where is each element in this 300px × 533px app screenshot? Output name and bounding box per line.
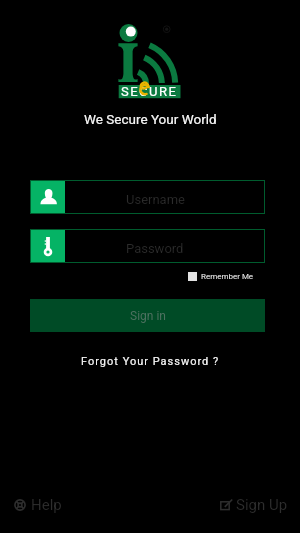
other: User (30, 180, 65, 214)
staticText: Username (126, 192, 185, 207)
staticText: SECURE (121, 84, 178, 99)
staticText: Sign in (130, 309, 166, 323)
staticText: Remember Me (201, 272, 254, 281)
button[interactable]: User (30, 180, 265, 214)
staticText: Sign Up (236, 496, 288, 514)
button[interactable]: Help (10, 490, 66, 520)
button[interactable]: Remember Me (186, 270, 256, 283)
staticText: Forgot Your Password ? (81, 355, 220, 368)
other: Password (30, 229, 65, 263)
staticText: Help (31, 496, 62, 514)
staticText: We Secure Your World (84, 111, 217, 127)
button[interactable]: Sign Up (216, 490, 292, 520)
button[interactable]: Password (30, 229, 265, 263)
button[interactable]: Forgot Your Password ? (77, 352, 224, 371)
staticText: Password (126, 241, 184, 256)
button[interactable]: Sign in (30, 299, 265, 332)
